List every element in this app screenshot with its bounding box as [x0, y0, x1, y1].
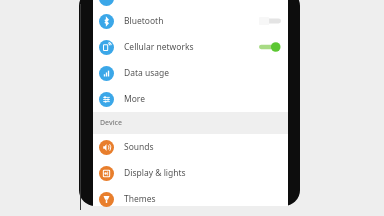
staticText: Bluetooth	[124, 15, 164, 27]
staticText: Display & lights	[124, 167, 186, 179]
button[interactable]: Display & lights	[93, 160, 288, 186]
staticText: Data usage	[124, 67, 170, 79]
staticText: Sounds	[124, 141, 154, 153]
button[interactable]: Bluetooth off	[259, 15, 281, 27]
button[interactable]: Cellular networks	[93, 34, 288, 60]
button[interactable]: Bluetooth	[93, 8, 288, 34]
staticText: More	[124, 93, 145, 105]
button[interactable]: Themes	[93, 186, 288, 212]
button[interactable]: Data usage	[93, 60, 288, 86]
staticText: Cellular networks	[124, 41, 194, 53]
staticText: Device	[100, 118, 123, 128]
button[interactable]: Cellular networks on	[259, 41, 281, 53]
button[interactable]: Sounds	[93, 134, 288, 160]
staticText: Themes	[124, 193, 156, 205]
button[interactable]: More	[93, 86, 288, 112]
